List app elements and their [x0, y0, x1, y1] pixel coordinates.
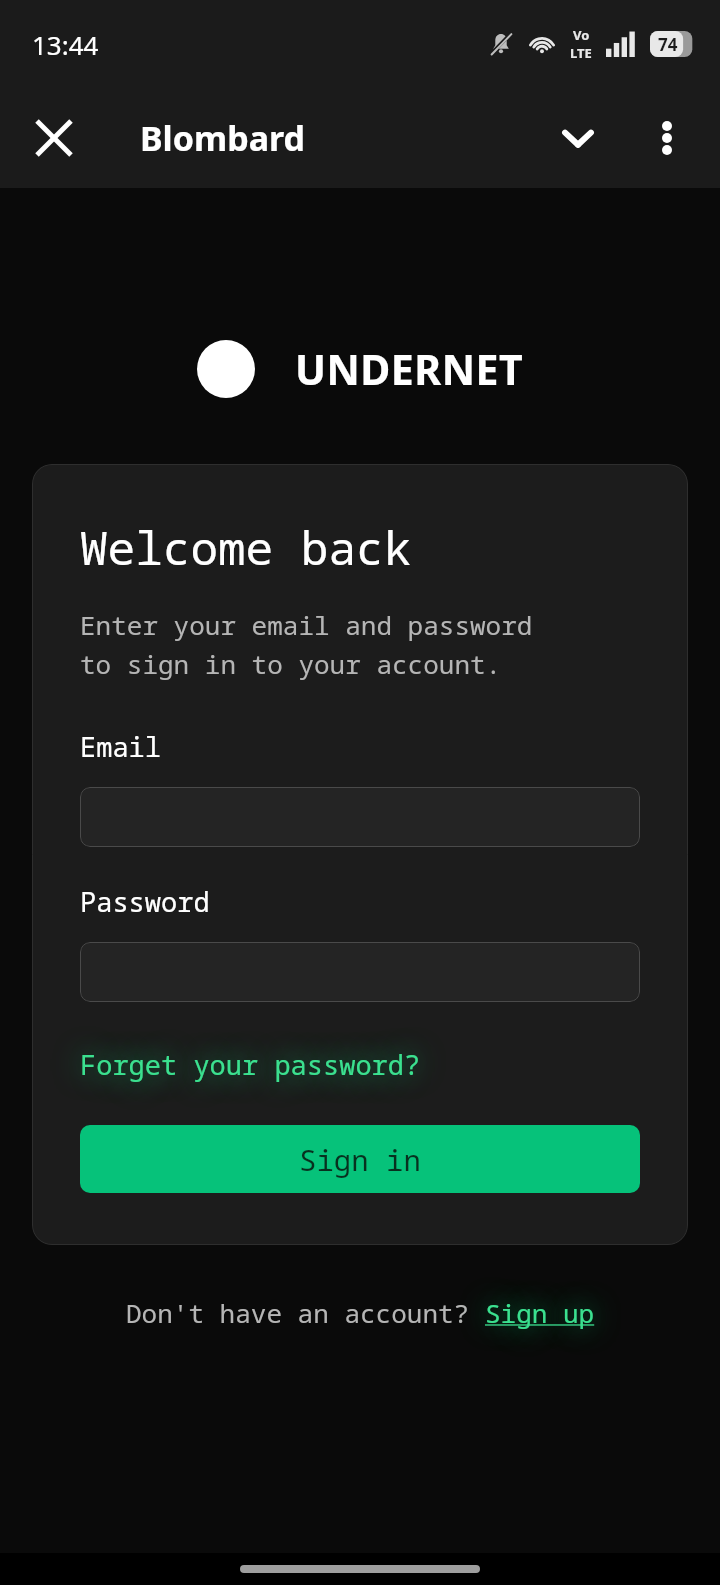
staticText: Forget your password? — [80, 1046, 421, 1083]
staticText: 13:44 — [32, 27, 99, 62]
button[interactable]: Forget your password? — [80, 1046, 421, 1083]
staticText: LTE — [570, 44, 592, 62]
staticText: Password — [80, 883, 210, 920]
staticText: Welcome back — [80, 516, 412, 579]
button[interactable]: Close — [20, 104, 88, 172]
button[interactable]: Email input — [80, 787, 640, 847]
staticText: Sign up — [485, 1295, 595, 1330]
staticText: Vo — [573, 26, 590, 44]
staticText: 74 — [658, 33, 678, 56]
button[interactable]: Sign up — [485, 1295, 595, 1330]
staticText: UNDERNET — [295, 341, 524, 397]
staticText: Enter your email and password to sign in… — [80, 607, 533, 682]
staticText: Don't have an account? — [126, 1295, 485, 1330]
button[interactable]: Sign in — [80, 1125, 640, 1193]
staticText: Blombard — [140, 115, 306, 161]
button[interactable]: More options — [636, 107, 698, 169]
staticText: Sign in — [299, 1140, 421, 1179]
button[interactable]: Password input — [80, 942, 640, 1002]
staticText: Email — [80, 728, 161, 765]
button[interactable]: Expand — [542, 102, 614, 174]
